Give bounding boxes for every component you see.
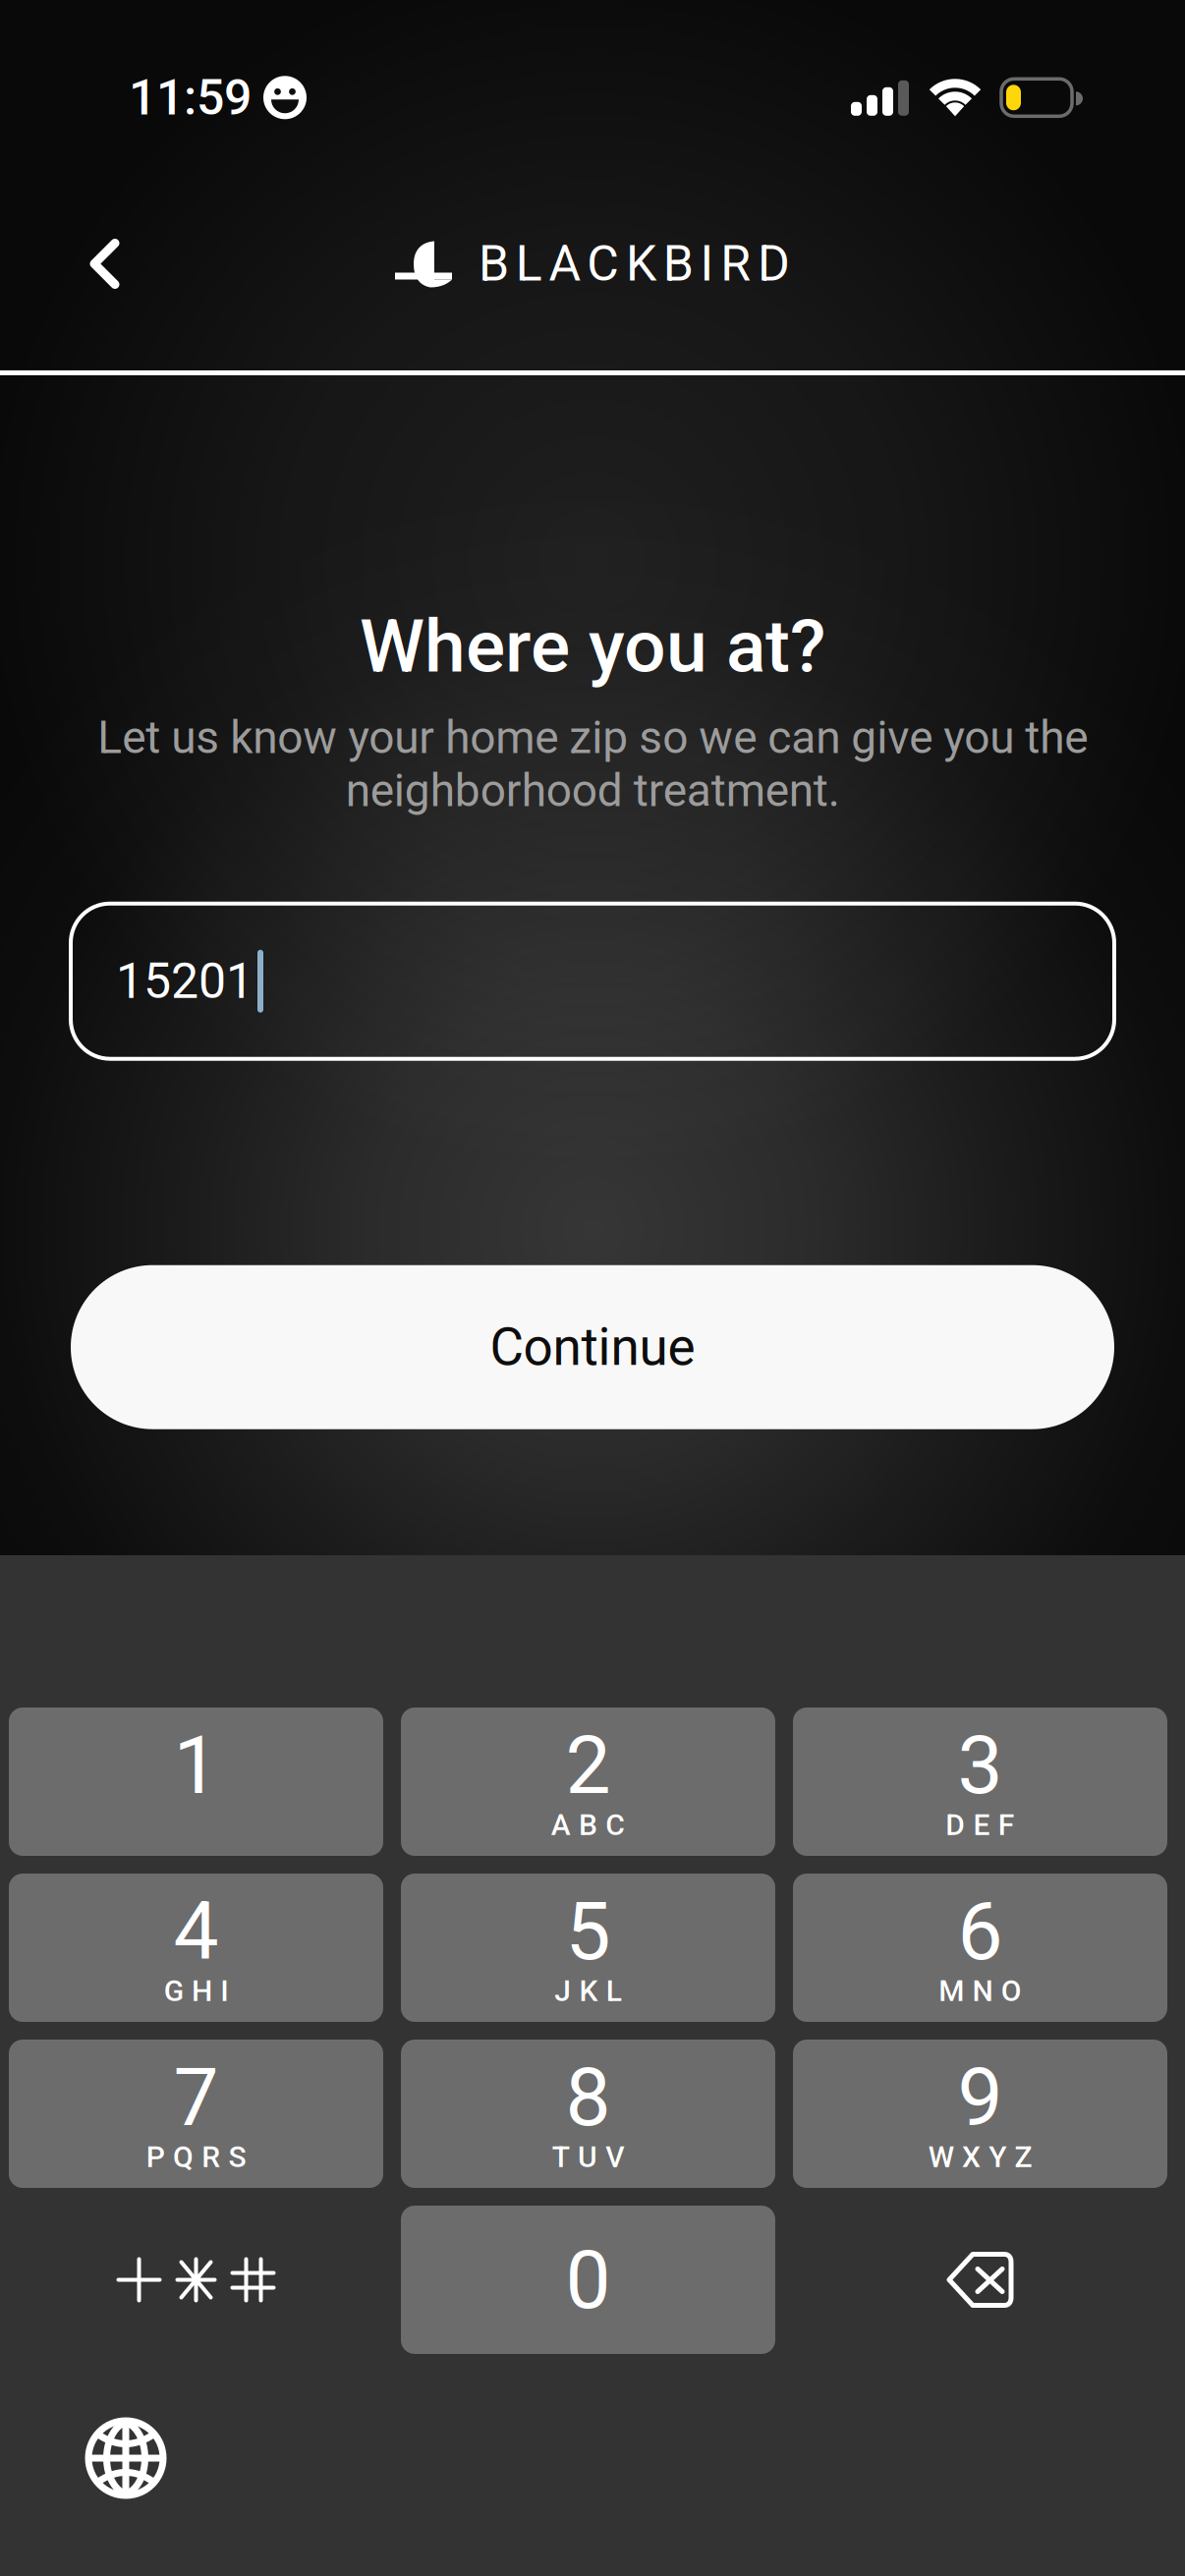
button[interactable]: Symbols <box>9 2206 383 2354</box>
staticText: 6 <box>958 1884 1003 1979</box>
staticText: Continue <box>490 1317 695 1378</box>
button[interactable]: 0 <box>401 2206 775 2354</box>
button[interactable]: 2 <box>401 1708 775 1856</box>
button[interactable]: Delete <box>793 2206 1167 2354</box>
staticText: ABC <box>551 1808 625 1842</box>
button[interactable]: Continue <box>71 1265 1114 1429</box>
button[interactable]: Change keyboard <box>55 2387 197 2529</box>
staticText: 5 <box>565 1884 611 1979</box>
staticText: 8 <box>565 2050 611 2145</box>
staticText: 9 <box>958 2050 1003 2145</box>
staticText: WXYZ <box>928 2140 1032 2174</box>
staticText: 2 <box>565 1718 611 1813</box>
staticText: 4 <box>173 1884 219 1979</box>
staticText: 15201 <box>116 952 254 1010</box>
staticText: MNO <box>939 1974 1022 2008</box>
staticText: 1 <box>173 1718 219 1813</box>
staticText: 0 <box>565 2233 611 2328</box>
staticText: TUV <box>552 2140 624 2174</box>
button[interactable]: 3 <box>793 1708 1167 1856</box>
staticText: BLACKBIRD <box>479 235 790 293</box>
staticText: 7 <box>173 2050 219 2145</box>
staticText: Let us know your home zip so we can give… <box>97 711 1088 817</box>
button[interactable]: 8 <box>401 2040 775 2188</box>
button[interactable]: Back <box>53 197 156 331</box>
staticText: JKL <box>554 1974 622 2008</box>
staticText: DEF <box>945 1808 1015 1842</box>
button[interactable]: 7 <box>9 2040 383 2188</box>
button[interactable]: 9 <box>793 2040 1167 2188</box>
button[interactable]: 4 <box>9 1874 383 2022</box>
button[interactable]: 1 <box>9 1708 383 1856</box>
staticText: GHI <box>164 1974 228 2008</box>
button[interactable]: 5 <box>401 1874 775 2022</box>
staticText: PQRS <box>146 2140 246 2174</box>
button[interactable]: 6 <box>793 1874 1167 2022</box>
staticText: Where you at? <box>360 603 825 690</box>
staticText: 11:59 <box>129 69 252 126</box>
staticText: 3 <box>958 1718 1003 1813</box>
